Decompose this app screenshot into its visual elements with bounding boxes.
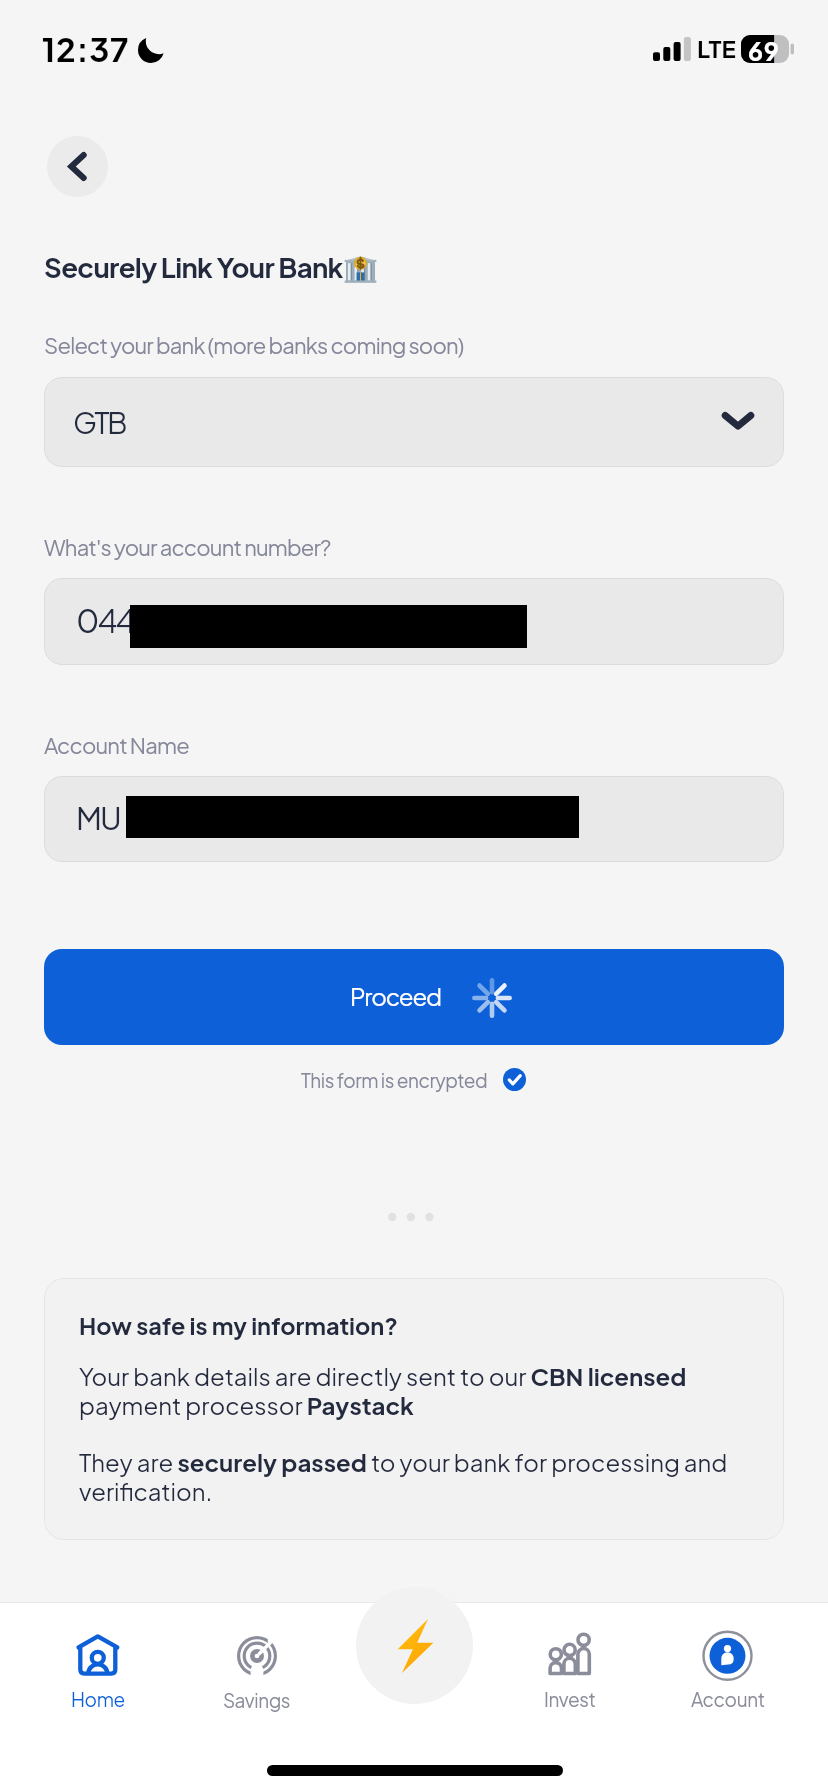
staticText: GTB [73,404,126,441]
staticText: 12:37 [42,28,130,70]
staticText: 69 [748,35,780,63]
staticText: Proceed [350,981,441,1011]
button[interactable]: GTB [44,377,784,467]
button[interactable]: Savings [192,1622,322,1712]
staticText: Home [71,1687,125,1711]
staticText: Invest [544,1687,596,1711]
staticText: How safe is my information? [79,1311,399,1341]
button[interactable]: MU [44,776,784,862]
staticText: What's your account number? [44,533,331,561]
button[interactable]: Home [33,1622,163,1711]
button[interactable]: Account [663,1622,793,1711]
staticText: Select your bank (more banks coming soon… [44,331,464,359]
staticText: Account Name [44,731,189,759]
staticText: LTE [697,33,736,63]
staticText: Securely Link Your Bank [44,249,343,284]
staticText: They are securely passed to your bank fo… [79,1447,739,1506]
button[interactable]: 044 [44,578,784,665]
staticText: Account [691,1687,765,1711]
button[interactable]: Quick actions [356,1587,473,1704]
button[interactable]: Back [47,136,108,197]
button[interactable]: Invest [505,1622,635,1711]
staticText: MU [76,798,120,837]
staticText: Savings [223,1688,291,1712]
staticText: Your bank details are directly sent to o… [79,1361,734,1420]
staticText: This form is encrypted [301,1068,488,1092]
staticText: 044 [76,600,134,640]
button[interactable]: Proceed [44,949,784,1045]
